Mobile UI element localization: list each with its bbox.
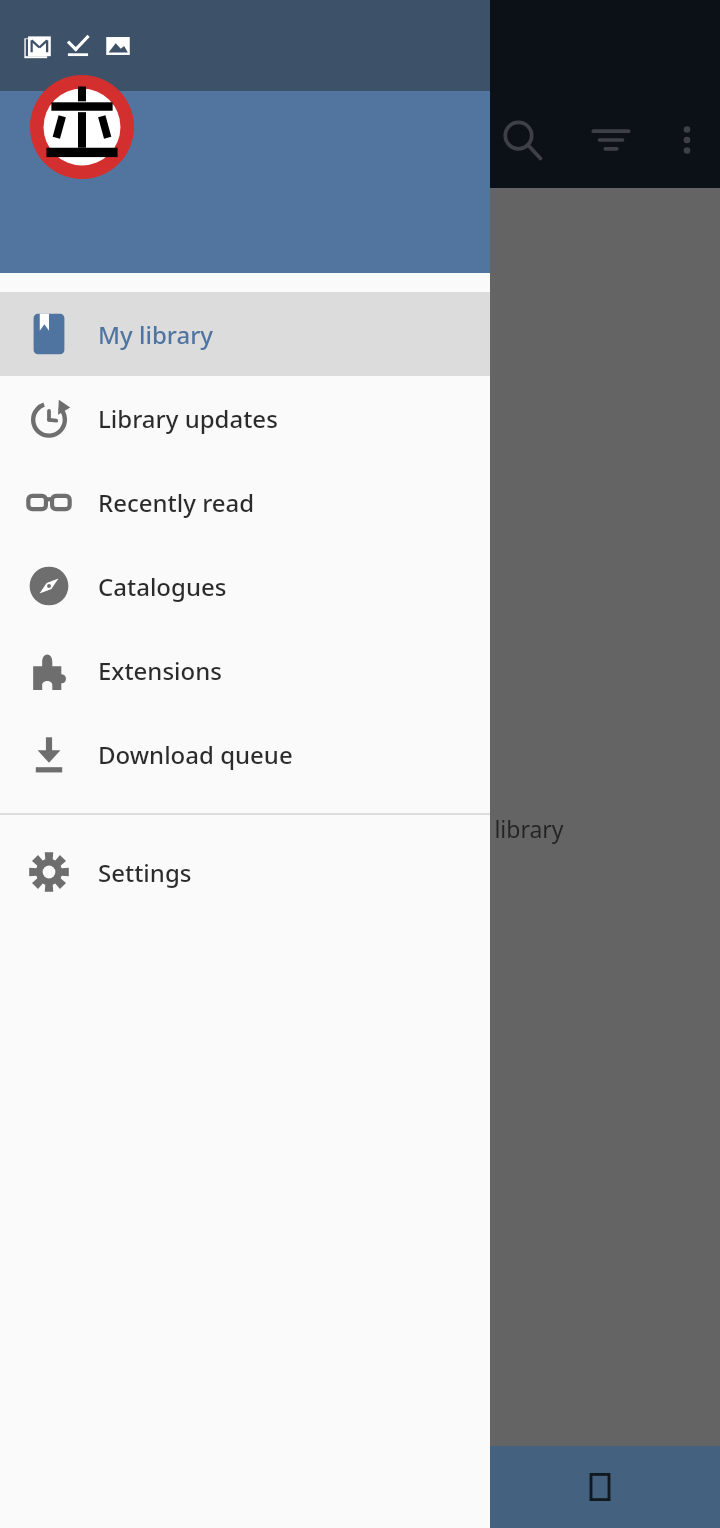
button[interactable]: Catalogues	[0, 544, 490, 628]
button[interactable]: Filter	[569, 98, 653, 182]
staticText: Settings	[98, 856, 192, 889]
staticText: Download queue	[98, 738, 293, 771]
button[interactable]: Library updates	[0, 376, 490, 460]
button[interactable]: Recents	[480, 1446, 720, 1528]
staticText: Extensions	[98, 654, 222, 687]
staticText: Recently read	[98, 486, 255, 519]
button[interactable]: Download queue	[0, 712, 490, 796]
staticText: Catalogues	[98, 570, 227, 603]
button[interactable]: Extensions	[0, 628, 490, 712]
button[interactable]: My library	[0, 292, 490, 376]
staticText: Library updates	[98, 402, 278, 435]
button[interactable]: Recently read	[0, 460, 490, 544]
button[interactable]: Search	[475, 93, 569, 187]
staticText: Add some manga titles to your library	[156, 813, 564, 844]
button[interactable]: Settings	[0, 830, 490, 914]
staticText: My library	[98, 318, 214, 351]
button[interactable]: More options	[653, 103, 720, 177]
